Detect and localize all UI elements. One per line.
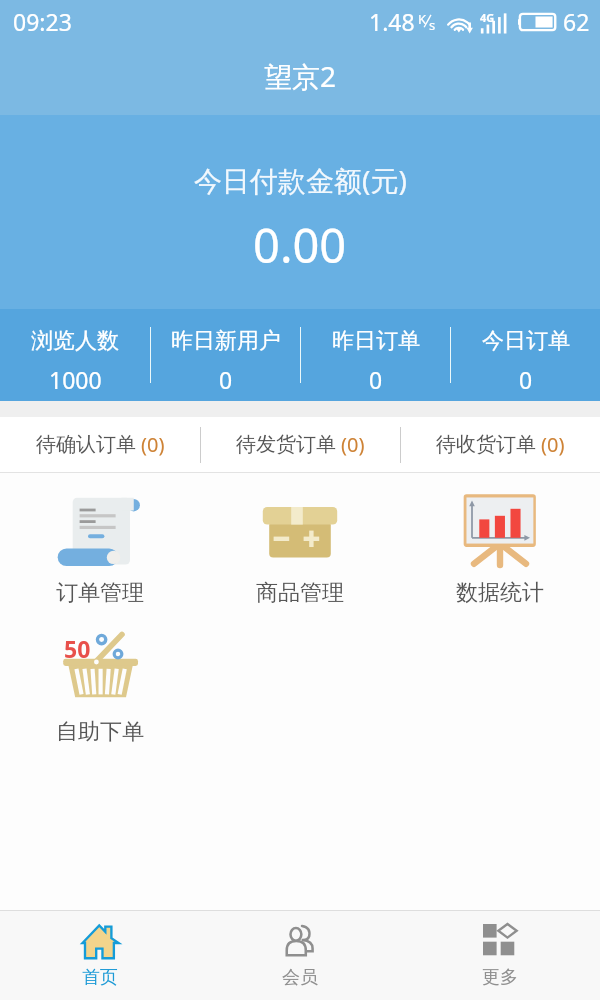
button[interactable]: 待确认订单 — [0, 417, 200, 472]
button[interactable]: 订单管理 — [0, 473, 200, 612]
staticText: 首页 — [82, 966, 118, 989]
staticText: 0 — [219, 364, 233, 395]
button[interactable]: 首页 — [0, 911, 200, 1000]
button[interactable]: 会员 — [200, 911, 400, 1000]
staticText: 0 — [519, 364, 533, 395]
staticText: (0) — [341, 431, 365, 458]
staticText: 更多 — [482, 966, 518, 989]
other: 首页 — [81, 923, 119, 959]
button[interactable]: 今日订单 — [451, 309, 600, 401]
staticText: 自助下单 — [56, 718, 144, 746]
button[interactable]: 更多 — [400, 911, 600, 1000]
staticText: 0 — [369, 364, 383, 395]
staticText: K — [418, 10, 427, 28]
staticText: 会员 — [282, 966, 318, 989]
staticText: 1000 — [49, 364, 102, 395]
other: 会员 — [283, 924, 317, 958]
button[interactable]: 50 — [0, 612, 200, 751]
staticText: (0) — [141, 431, 165, 458]
staticText: 商品管理 — [256, 579, 344, 607]
staticText: 待发货订单 — [236, 432, 336, 457]
staticText: 待确认订单 — [36, 432, 136, 457]
staticText: 0.00 — [253, 213, 347, 277]
staticText: 昨日新用户 — [171, 327, 281, 355]
button[interactable]: 待发货订单 — [201, 417, 400, 472]
button[interactable]: 浏览人数 — [0, 309, 150, 401]
staticText: 浏览人数 — [31, 327, 119, 355]
staticText: 订单管理 — [56, 579, 144, 607]
button[interactable]: 待收货订单 — [401, 417, 600, 472]
button[interactable]: 昨日订单 — [301, 309, 450, 401]
staticText: 望京2 — [264, 57, 337, 95]
staticText: (0) — [541, 431, 565, 458]
staticText: s — [429, 16, 436, 34]
button[interactable]: 商品管理 — [200, 473, 400, 612]
staticText: 1.48 — [369, 6, 415, 37]
button[interactable]: 昨日新用户 — [151, 309, 300, 401]
other: 更多 — [483, 924, 517, 958]
staticText: 数据统计 — [456, 579, 544, 607]
staticText: 62 — [563, 6, 590, 37]
staticText: 待收货订单 — [436, 432, 536, 457]
staticText: 昨日订单 — [332, 327, 420, 355]
button[interactable]: 数据统计 — [400, 473, 600, 612]
staticText: 今日订单 — [482, 327, 570, 355]
staticText: 今日付款金额(元) — [194, 161, 407, 199]
staticText: 50 — [64, 633, 91, 664]
staticText: 4G — [480, 10, 495, 25]
staticText: 09:23 — [13, 6, 72, 37]
